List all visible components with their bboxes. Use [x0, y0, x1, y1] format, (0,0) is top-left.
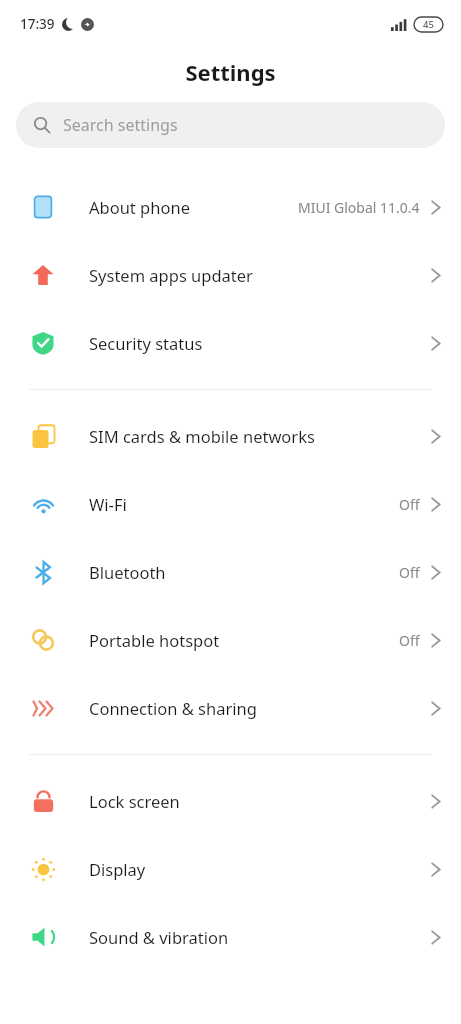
staticText: System apps updater: [89, 264, 431, 286]
staticText: Settings: [185, 57, 276, 87]
staticText: Portable hotspot: [89, 629, 399, 651]
button[interactable]: About phone: [0, 173, 461, 241]
staticText: Sound & vibration: [89, 926, 431, 948]
staticText: Connection & sharing: [89, 697, 431, 719]
button[interactable]: Search settings: [16, 102, 445, 148]
staticText: Off: [399, 495, 420, 514]
button[interactable]: Connection & sharing: [0, 674, 461, 742]
button[interactable]: Lock screen: [0, 767, 461, 835]
button[interactable]: Display: [0, 835, 461, 903]
button[interactable]: SIM cards & mobile networks: [0, 402, 461, 470]
staticText: Display: [89, 858, 431, 880]
staticText: Off: [399, 631, 420, 650]
staticText: Security status: [89, 332, 431, 354]
staticText: 45: [423, 18, 434, 31]
button[interactable]: Portable hotspot: [0, 606, 461, 674]
button[interactable]: Security status: [0, 309, 461, 377]
staticText: Search settings: [63, 114, 178, 136]
staticText: 17:39: [20, 15, 55, 33]
staticText: Wi-Fi: [89, 493, 399, 515]
staticText: SIM cards & mobile networks: [89, 425, 431, 447]
button[interactable]: Bluetooth: [0, 538, 461, 606]
button[interactable]: Sound & vibration: [0, 903, 461, 971]
staticText: Bluetooth: [89, 561, 399, 583]
staticText: Off: [399, 563, 420, 582]
button[interactable]: Wi-Fi: [0, 470, 461, 538]
staticText: Lock screen: [89, 790, 431, 812]
button[interactable]: System apps updater: [0, 241, 461, 309]
staticText: About phone: [89, 196, 298, 218]
staticText: MIUI Global 11.0.4: [298, 198, 420, 217]
